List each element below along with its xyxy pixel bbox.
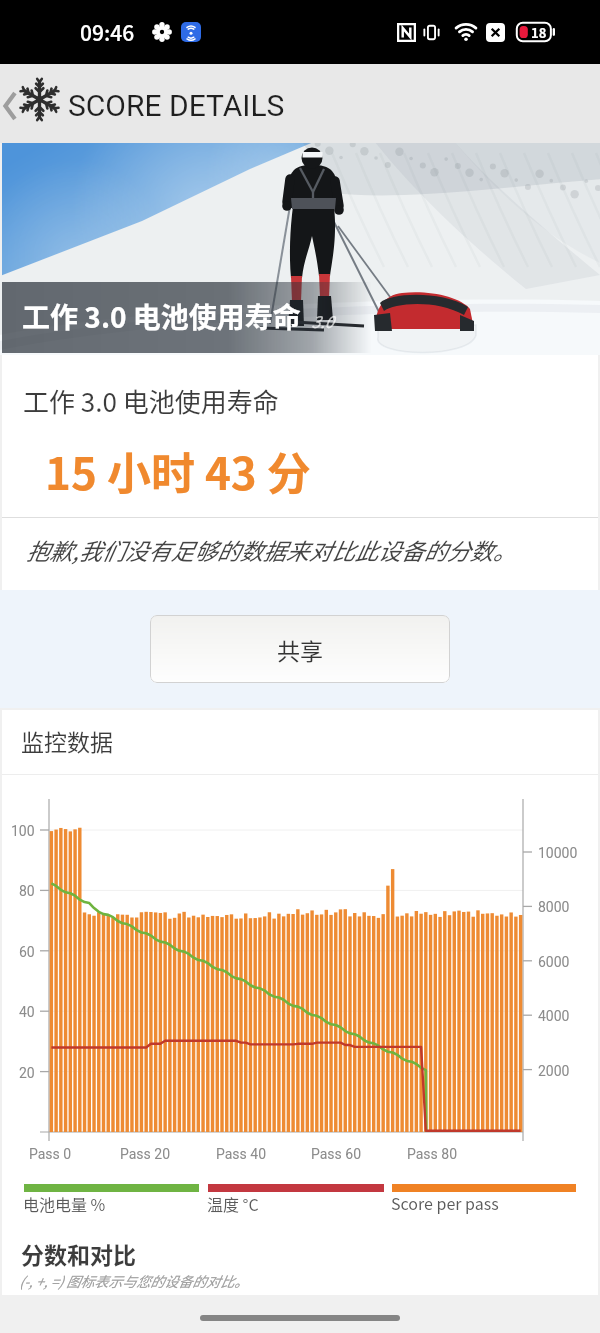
staticText: 80 <box>19 883 35 899</box>
staticText: 20 <box>19 1065 35 1081</box>
staticText: (-, +, =) 图标表示与您的设备的对比。 <box>19 1271 249 1291</box>
staticText: Pass 40 <box>216 1146 267 1162</box>
staticText: 工作 3.0 电池使用寿命 <box>22 296 301 337</box>
staticText: 抱歉,我们没有足够的数据来对比此设备的分数。 <box>26 533 516 566</box>
staticText: 3.0 <box>311 309 334 332</box>
staticText: Pass 0 <box>29 1146 72 1162</box>
staticText: Pass 20 <box>120 1146 171 1162</box>
staticText: 共享 <box>277 633 323 666</box>
staticText: Pass 60 <box>311 1146 362 1162</box>
staticText: 监控数据 <box>21 724 113 757</box>
staticText: 4000 <box>538 1008 570 1024</box>
staticText: 6000 <box>538 954 570 970</box>
staticText: 100 <box>11 823 35 839</box>
staticText: 15 小时 43 分 <box>45 439 311 503</box>
staticText: SCORE DETAILS <box>68 88 285 123</box>
staticText: 18 <box>531 23 547 42</box>
staticText: Score per pass <box>391 1191 499 1214</box>
staticText: 温度 °C <box>207 1192 259 1215</box>
staticText: 8000 <box>538 899 570 915</box>
staticText: 分数和对比 <box>21 1237 136 1270</box>
staticText: 10000 <box>538 845 578 861</box>
staticText: Pass 80 <box>407 1146 458 1162</box>
staticText: 40 <box>19 1004 35 1020</box>
staticText: 电池电量 % <box>23 1192 106 1215</box>
staticText: 60 <box>19 944 35 960</box>
button[interactable]: 共享 <box>150 615 450 683</box>
button[interactable]: Back <box>0 72 63 127</box>
staticText: 工作 3.0 电池使用寿命 <box>23 382 279 420</box>
staticText: 09:46 <box>80 17 135 47</box>
staticText: 2000 <box>538 1063 570 1079</box>
